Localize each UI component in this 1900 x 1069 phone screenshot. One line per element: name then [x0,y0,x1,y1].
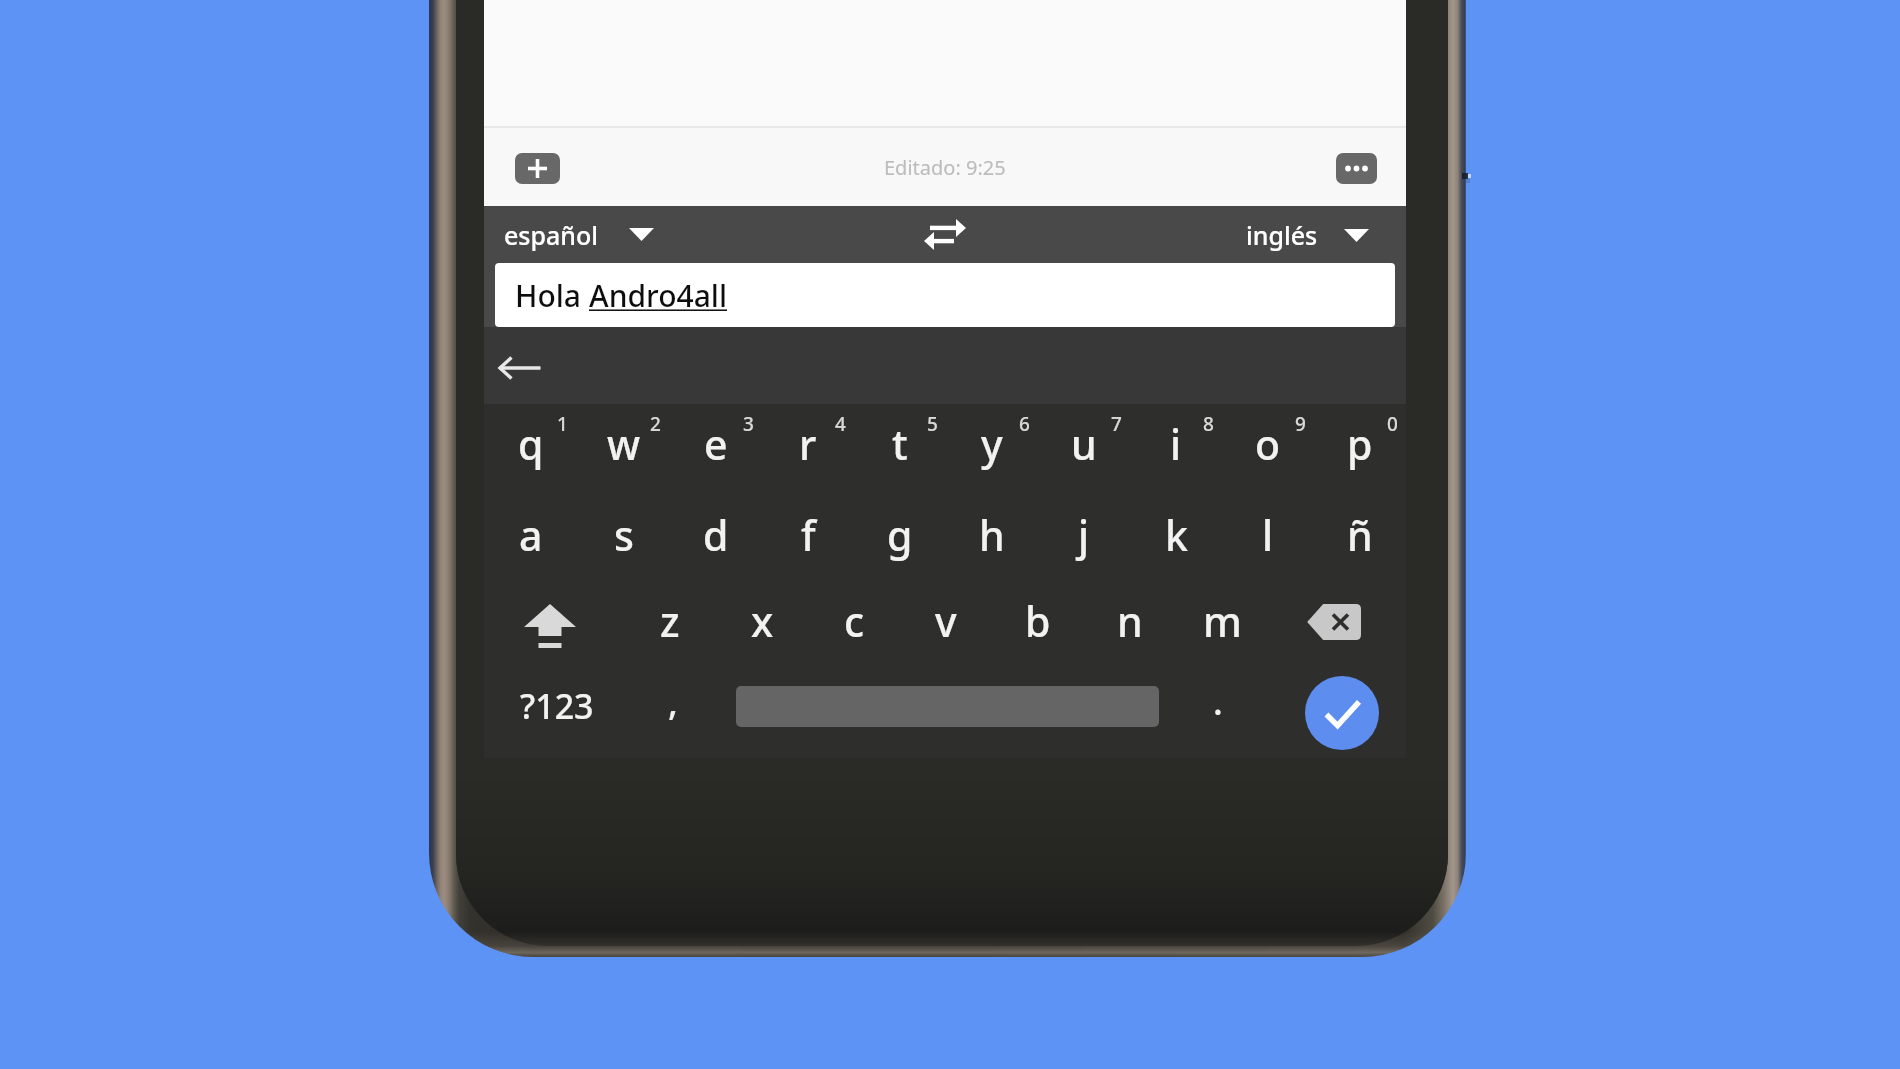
staticText: v [935,593,957,649]
button[interactable]: r [762,404,854,492]
staticText: 4 [835,411,846,437]
button[interactable]: Shift [484,578,623,664]
button[interactable]: z [623,578,716,664]
button[interactable]: y [946,404,1038,492]
staticText: ?123 [520,683,594,729]
staticText: l [1262,507,1274,563]
staticText: 6 [1019,411,1030,437]
staticText: 3 [743,411,754,437]
staticText: Editado: 9:25 [884,154,1006,181]
staticText: c [844,593,865,649]
button[interactable]: Backspace [1268,578,1406,664]
button[interactable]: ñ [1314,492,1406,578]
staticText: , [668,677,678,726]
button[interactable]: o [1222,404,1314,492]
staticText: Hola [515,275,589,316]
staticText: b [1025,593,1051,649]
button[interactable]: Back [489,337,551,399]
button[interactable]: h [946,492,1038,578]
button[interactable]: w [577,404,670,492]
staticText: 7 [1111,411,1122,437]
button[interactable]: . [1159,664,1277,750]
staticText: Andro4all [589,275,727,316]
button[interactable]: q [484,404,577,492]
staticText: r [799,416,817,472]
button[interactable]: a [484,492,577,578]
staticText: h [979,507,1005,563]
button[interactable]: inglés [1246,218,1369,252]
staticText: 9 [1295,411,1306,437]
button[interactable]: v [900,578,992,664]
button[interactable]: m [1176,578,1268,664]
button[interactable]: ?123 [484,664,630,750]
button[interactable]: g [854,492,946,578]
button[interactable]: Add [515,153,560,184]
staticText: f [801,507,816,563]
staticText: e [704,416,728,472]
staticText: inglés [1246,218,1318,252]
staticText: 2 [650,411,661,437]
staticText: . [1213,677,1223,726]
button[interactable]: l [1222,492,1314,578]
staticText: a [519,507,543,563]
staticText: x [751,593,774,649]
staticText: u [1071,416,1097,472]
button[interactable]: n [1084,578,1176,664]
button[interactable]: t [854,404,946,492]
button[interactable]: j [1038,492,1130,578]
staticText: y [981,416,1003,472]
staticText: español [504,218,599,252]
staticText: 8 [1203,411,1214,437]
button[interactable]: u [1038,404,1130,492]
button[interactable]: Enter [1277,664,1406,750]
staticText: k [1165,507,1188,563]
button[interactable]: b [992,578,1084,664]
button[interactable]: s [577,492,670,578]
button[interactable]: d [670,492,762,578]
staticText: i [1170,416,1182,472]
button[interactable]: español [504,206,1406,263]
staticText: p [1347,416,1373,472]
staticText: j [1078,507,1090,563]
staticText: z [660,593,680,649]
button[interactable]: , [630,664,736,750]
staticText: t [892,416,908,472]
staticText: d [703,507,729,563]
button[interactable]: p [1314,404,1406,492]
button[interactable]: i [1130,404,1222,492]
staticText: 0 [1387,411,1398,437]
staticText: m [1203,593,1242,649]
staticText: g [887,507,913,563]
staticText: q [518,416,544,472]
staticText: 1 [557,411,568,437]
button[interactable]: Swap languages [916,206,974,263]
staticText: o [1255,416,1281,472]
button[interactable]: Hola [495,263,1395,327]
staticText: w [607,416,641,472]
staticText: ñ [1347,507,1373,563]
button[interactable]: k [1130,492,1222,578]
button[interactable]: f [762,492,854,578]
button[interactable]: c [808,578,900,664]
button[interactable]: e [670,404,762,492]
button[interactable]: x [716,578,808,664]
staticText: n [1117,593,1143,649]
staticText: 5 [927,411,938,437]
staticText: s [614,507,634,563]
button[interactable]: More options [1336,153,1377,184]
